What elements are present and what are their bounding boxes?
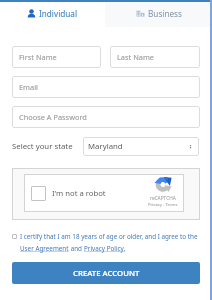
staticText: Last Name	[117, 52, 154, 62]
staticText: Email	[19, 82, 38, 92]
staticText: First Name	[19, 52, 57, 62]
staticText: CREATE ACCOUNT	[73, 268, 140, 279]
staticText: and	[69, 244, 84, 253]
button[interactable]: Individual	[0, 0, 105, 27]
staticText: Choose A Password	[19, 112, 87, 122]
button[interactable]: CREATE ACCOUNT	[12, 262, 200, 284]
button[interactable]: User Agreement	[20, 244, 69, 253]
button[interactable]: Business	[105, 0, 212, 27]
button[interactable]: Choose A Password	[12, 106, 200, 128]
staticText: I'm not a robot	[52, 188, 106, 198]
staticText: Privacy - Terms	[148, 202, 178, 208]
staticText: Maryland	[88, 141, 123, 152]
button[interactable]: Maryland	[83, 137, 199, 156]
staticText: Select your state	[12, 141, 73, 152]
staticText: reCAPTCHA	[150, 195, 176, 202]
staticText: Individual	[39, 8, 78, 19]
staticText: Business	[148, 8, 182, 19]
button[interactable]: Agree to terms and conditions checkbox	[12, 234, 17, 239]
button[interactable]: Privacy Policy.	[84, 244, 126, 253]
button[interactable]: First Name	[12, 46, 101, 68]
button[interactable]: Last Name	[110, 46, 200, 68]
button[interactable]: I'm not a robot checkbox	[31, 186, 46, 201]
button[interactable]: Email	[12, 76, 200, 98]
staticText: I certify that I am 18 years of age or o…	[20, 232, 198, 241]
